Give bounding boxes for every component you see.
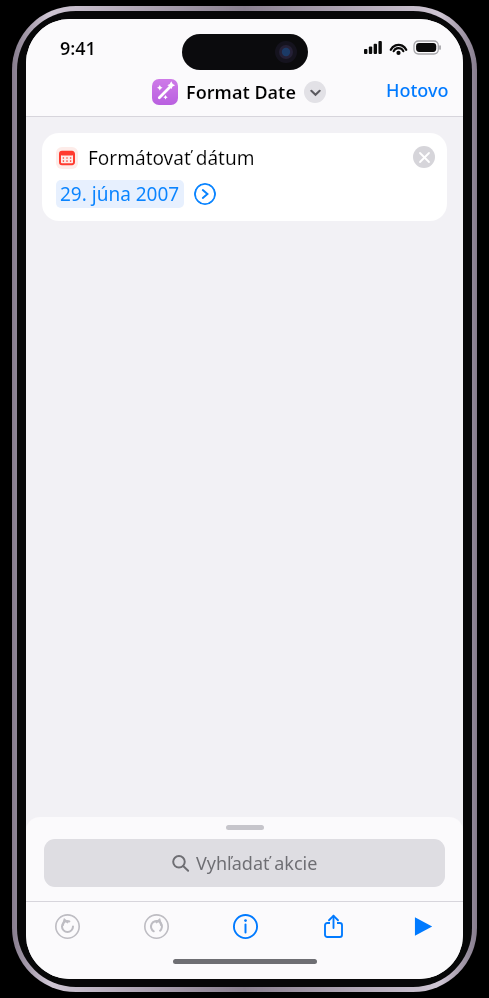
- button[interactable]: Remove action: [413, 146, 435, 168]
- staticText: 9:41: [60, 36, 96, 61]
- staticText: Format Date: [186, 80, 296, 105]
- staticText: Formátovať dátum: [88, 145, 255, 171]
- button[interactable]: 29. júna 2007: [56, 180, 184, 208]
- staticText: Vyhľadať akcie: [196, 851, 318, 876]
- button[interactable]: Format Date: [152, 79, 326, 105]
- button[interactable]: Share: [306, 903, 360, 949]
- button[interactable]: Run shortcut: [395, 903, 449, 949]
- button[interactable]: Redo: [129, 903, 183, 949]
- staticText: 29. júna 2007: [60, 181, 180, 207]
- button[interactable]: Undo: [40, 903, 94, 949]
- button[interactable]: Hotovo: [372, 74, 463, 107]
- staticText: Hotovo: [386, 78, 449, 103]
- button[interactable]: Formátovať dátum: [42, 133, 447, 221]
- button[interactable]: Show more options: [304, 81, 326, 103]
- button[interactable]: Vyhľadať akcie: [44, 839, 445, 887]
- button[interactable]: Details: [218, 903, 272, 949]
- button[interactable]: Open date format options: [194, 183, 216, 205]
